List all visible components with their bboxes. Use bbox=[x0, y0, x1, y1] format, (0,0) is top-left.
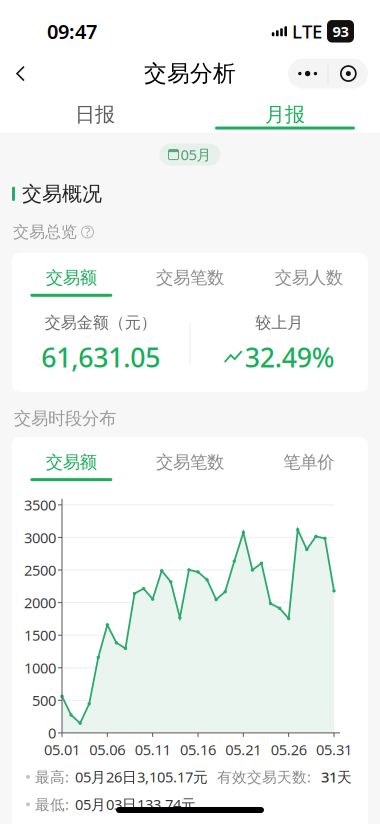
staticText: 1000 bbox=[24, 658, 56, 677]
staticText: 1500 bbox=[24, 625, 56, 645]
staticText: 0 bbox=[48, 723, 56, 743]
staticText: 有效交易天数: bbox=[217, 767, 311, 787]
staticText: 交易额 bbox=[46, 267, 97, 288]
button[interactable]: 交易笔数 bbox=[131, 452, 249, 481]
staticText: 93 bbox=[332, 21, 348, 41]
button[interactable]: 月报 bbox=[190, 97, 380, 133]
staticText: 05月26日3,105.17元 bbox=[75, 767, 208, 787]
button[interactable]: 交易额 bbox=[12, 452, 131, 481]
staticText: 较上月 bbox=[255, 313, 303, 332]
staticText: 3500 bbox=[24, 495, 56, 515]
staticText: 交易分析 bbox=[144, 60, 236, 87]
staticText: 05.06 bbox=[89, 740, 125, 759]
staticText: 交易人数 bbox=[275, 267, 343, 288]
staticText: 最高: bbox=[35, 767, 69, 787]
staticText: 日报 bbox=[75, 102, 115, 127]
staticText: 05.26 bbox=[271, 740, 307, 759]
staticText: 05.16 bbox=[180, 740, 216, 759]
staticText: 32.49% bbox=[245, 339, 335, 375]
staticText: ? bbox=[85, 224, 90, 240]
staticText: 交易笔数 bbox=[156, 451, 224, 473]
staticText: 笔单价 bbox=[283, 451, 334, 473]
button[interactable]: 05月 bbox=[159, 144, 220, 166]
staticText: 31天 bbox=[321, 767, 352, 787]
staticText: 09:47 bbox=[47, 18, 97, 45]
button[interactable]: 日报 bbox=[0, 97, 190, 133]
staticText: 最低: bbox=[35, 795, 69, 814]
staticText: 05.11 bbox=[135, 740, 171, 759]
staticText: 05.21 bbox=[225, 740, 261, 759]
button[interactable]: 交易人数 bbox=[249, 268, 368, 297]
staticText: 61,631.05 bbox=[41, 339, 160, 375]
button[interactable]: 交易额 bbox=[12, 268, 131, 297]
staticText: 2500 bbox=[24, 560, 56, 580]
staticText: 3000 bbox=[24, 528, 56, 547]
staticText: 05.01 bbox=[44, 740, 80, 759]
button[interactable]: 笔单价 bbox=[249, 452, 368, 481]
button[interactable]: 返回 bbox=[2, 54, 40, 94]
staticText: 交易总览 bbox=[13, 222, 77, 242]
staticText: 05月 bbox=[180, 145, 211, 164]
staticText: 交易金额（元） bbox=[45, 313, 157, 332]
staticText: 月报 bbox=[265, 102, 305, 127]
staticText: 05.31 bbox=[316, 740, 352, 759]
staticText: 交易额 bbox=[46, 451, 97, 473]
staticText: 交易笔数 bbox=[156, 267, 224, 288]
staticText: LTE bbox=[292, 19, 322, 44]
staticText: 交易时段分布 bbox=[14, 408, 116, 429]
staticText: 2000 bbox=[24, 593, 56, 612]
staticText: 05月03日133.74元 bbox=[75, 795, 196, 814]
button[interactable]: 更多 bbox=[288, 59, 368, 89]
button[interactable]: 交易笔数 bbox=[131, 268, 249, 297]
staticText: 交易概况 bbox=[22, 182, 102, 206]
staticText: 500 bbox=[32, 691, 56, 710]
